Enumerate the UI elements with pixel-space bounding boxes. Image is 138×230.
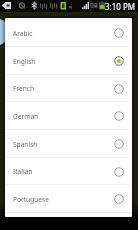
staticText: French bbox=[13, 84, 35, 93]
other: Selected bbox=[114, 56, 124, 66]
button[interactable]: French bbox=[5, 75, 132, 102]
button[interactable]: German bbox=[5, 102, 132, 130]
staticText: Portuguese bbox=[13, 195, 49, 204]
staticText: Spanish bbox=[13, 140, 38, 149]
button[interactable]: English bbox=[5, 47, 132, 75]
button[interactable]: Portuguese bbox=[5, 185, 132, 213]
staticText: Italian bbox=[13, 167, 33, 176]
staticText: German bbox=[13, 112, 39, 121]
button[interactable]: Italian bbox=[5, 158, 132, 185]
button[interactable]: Spanish bbox=[5, 130, 132, 158]
other: Not selected bbox=[114, 139, 124, 149]
staticText: 3:10 PM bbox=[105, 1, 136, 12]
other: Not selected bbox=[114, 111, 124, 121]
button[interactable]: Arabic bbox=[5, 19, 132, 47]
staticText: Arabic bbox=[13, 29, 33, 38]
staticText: English bbox=[13, 57, 36, 66]
other: Not selected bbox=[114, 84, 124, 94]
other: Not selected bbox=[114, 167, 124, 177]
other: Not selected bbox=[114, 194, 124, 204]
other: Not selected bbox=[114, 28, 124, 38]
